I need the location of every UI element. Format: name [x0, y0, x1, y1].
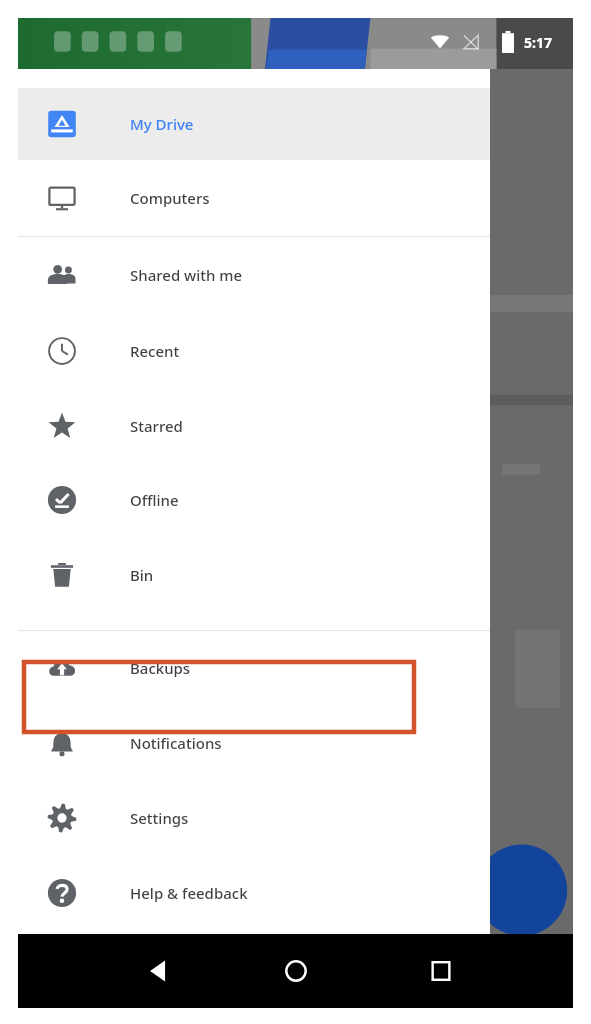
staticText: Recent — [130, 341, 180, 361]
button[interactable]: My Drive — [18, 88, 490, 160]
staticText: Shared with me — [130, 265, 243, 285]
button[interactable]: Settings — [18, 780, 490, 855]
staticText: Bin — [130, 565, 154, 585]
button[interactable]: Notifications — [18, 705, 490, 780]
button[interactable]: Offline — [18, 463, 490, 537]
button[interactable]: Recent apps — [419, 949, 463, 993]
staticText: Backups — [130, 658, 191, 678]
staticText: Offline — [130, 490, 179, 510]
button[interactable]: Recent — [18, 313, 490, 388]
staticText: Notifications — [130, 733, 222, 753]
button[interactable]: Computers — [18, 160, 490, 236]
button[interactable]: Back — [136, 949, 180, 993]
staticText: Settings — [130, 808, 189, 828]
staticText: Computers — [130, 188, 210, 208]
staticText: Starred — [130, 416, 183, 436]
button[interactable]: Bin — [18, 537, 490, 612]
button[interactable]: Starred — [18, 388, 490, 463]
button[interactable]: Backups — [18, 631, 490, 705]
button[interactable]: Shared with me — [18, 237, 490, 313]
staticText: 5:17 — [524, 33, 552, 52]
staticText: My Drive — [130, 114, 194, 134]
button[interactable]: Home — [274, 949, 318, 993]
button[interactable]: Help & feedback — [18, 855, 490, 930]
staticText: Help & feedback — [130, 883, 248, 903]
